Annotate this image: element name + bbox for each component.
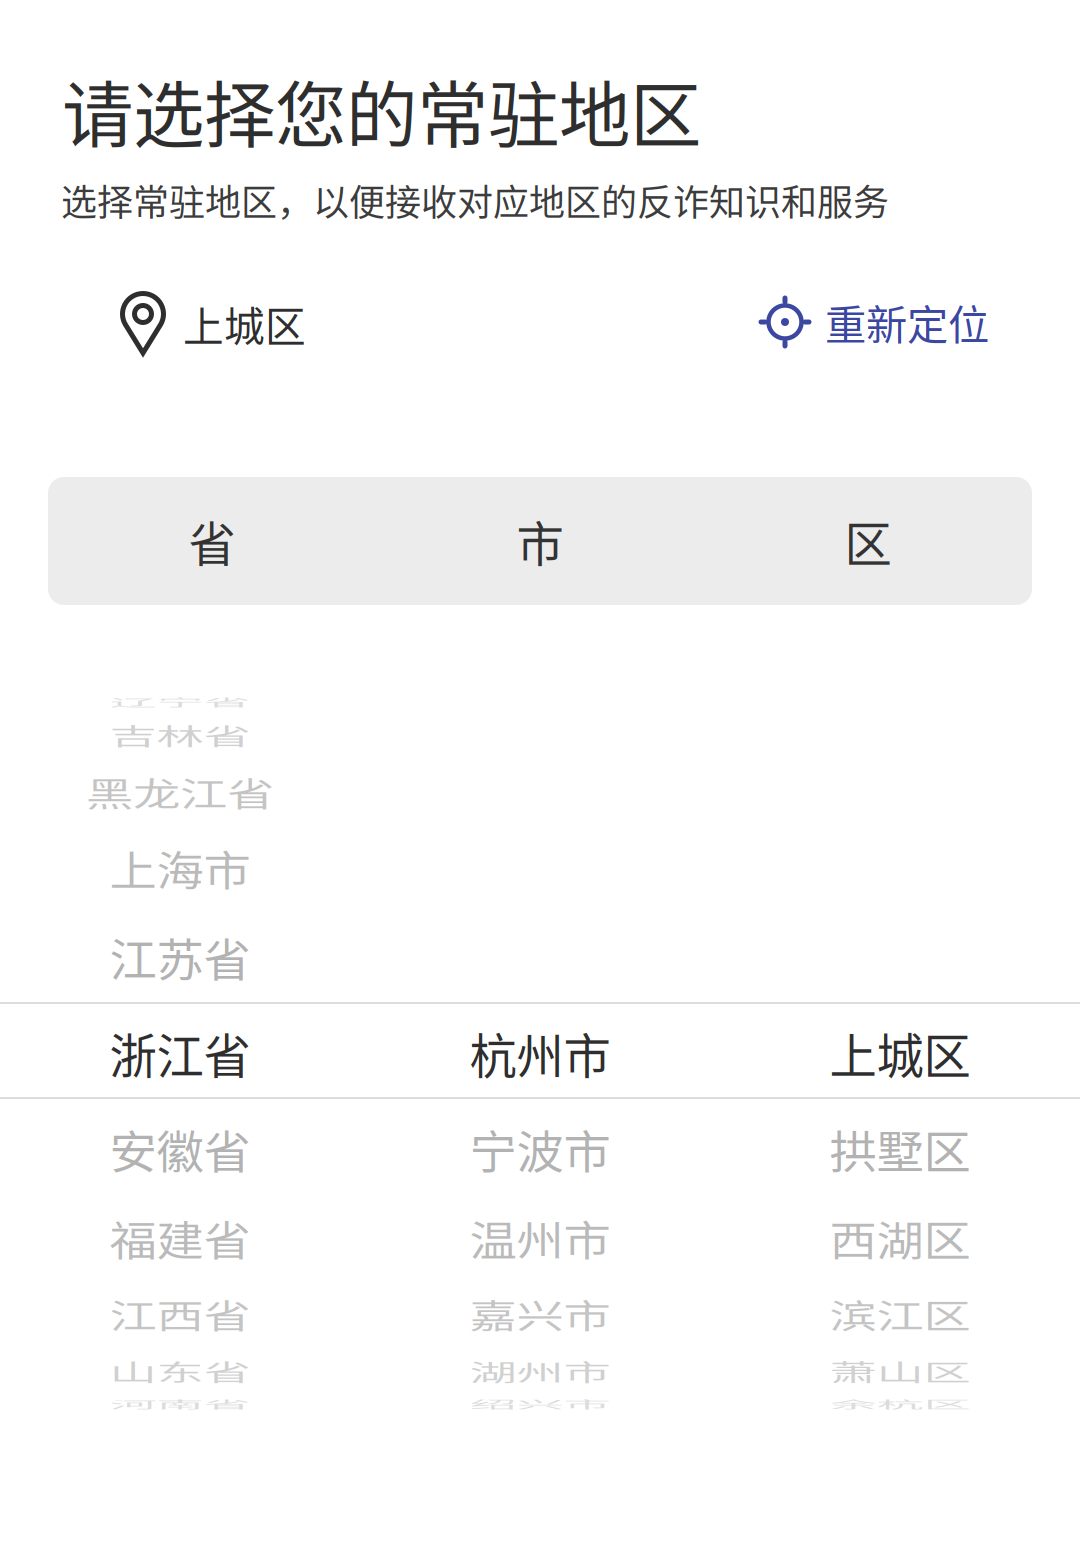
button[interactable]: 上海市: [0, 833, 360, 903]
staticText: 江西省: [109, 1280, 250, 1348]
staticText: 选择常驻地区，以便接收对应地区的反诈知识和服务: [61, 174, 889, 226]
staticText: 余杭区: [829, 1370, 970, 1438]
staticText: 请选择您的常驻地区: [62, 58, 701, 162]
staticText: 江苏省: [109, 923, 250, 991]
button[interactable]: 拱墅区: [720, 1114, 1080, 1184]
button[interactable]: 西湖区: [720, 1203, 1080, 1273]
button[interactable]: 区: [704, 477, 1032, 605]
staticText: 湖州市: [469, 1337, 610, 1405]
button[interactable]: 上城区: [720, 1005, 1080, 1100]
button[interactable]: 杭州市: [360, 1005, 720, 1100]
staticText: 温州市: [469, 1204, 610, 1272]
staticText: 上城区: [183, 295, 306, 353]
staticText: 福建省: [109, 1204, 250, 1272]
button[interactable]: 上城区: [113, 286, 312, 362]
button[interactable]: 嘉兴市: [360, 1279, 720, 1349]
staticText: 省: [188, 507, 235, 575]
staticText: 区: [844, 507, 891, 575]
staticText: 上城区: [829, 1019, 970, 1087]
button[interactable]: 山东省: [0, 1336, 360, 1406]
staticText: 西湖区: [829, 1204, 970, 1272]
button[interactable]: 安徽省: [0, 1114, 360, 1184]
staticText: 山东省: [109, 1337, 250, 1405]
staticText: 嘉兴市: [469, 1280, 610, 1348]
button[interactable]: 黑龙江省: [0, 757, 360, 827]
button[interactable]: 宁波市: [360, 1114, 720, 1184]
button[interactable]: 市: [376, 477, 704, 605]
staticText: 拱墅区: [829, 1115, 970, 1183]
staticText: 河南省: [109, 1370, 250, 1438]
staticText: 黑龙江省: [86, 758, 274, 826]
button[interactable]: 重新定位: [752, 284, 995, 360]
button[interactable]: 滨江区: [720, 1279, 1080, 1349]
button[interactable]: 江苏省: [0, 922, 360, 992]
button[interactable]: 河南省: [0, 1369, 360, 1439]
button[interactable]: 绍兴市: [360, 1369, 720, 1439]
button[interactable]: 温州市: [360, 1203, 720, 1273]
button[interactable]: 江西省: [0, 1279, 360, 1349]
button[interactable]: 省: [48, 477, 376, 605]
staticText: 重新定位: [825, 292, 989, 352]
button[interactable]: 辽宁省: [0, 667, 360, 737]
staticText: 杭州市: [469, 1019, 610, 1087]
staticText: 萧山区: [829, 1337, 970, 1405]
button[interactable]: 吉林省: [0, 700, 360, 770]
button[interactable]: 浙江省: [0, 1005, 360, 1100]
staticText: 宁波市: [469, 1115, 610, 1183]
staticText: 安徽省: [109, 1115, 250, 1183]
button[interactable]: 余杭区: [720, 1369, 1080, 1439]
staticText: 辽宁省: [109, 668, 250, 736]
staticText: 滨江区: [829, 1280, 970, 1348]
button[interactable]: 湖州市: [360, 1336, 720, 1406]
staticText: 上海市: [109, 834, 250, 902]
button[interactable]: 萧山区: [720, 1336, 1080, 1406]
staticText: 绍兴市: [469, 1370, 610, 1438]
staticText: 浙江省: [109, 1019, 250, 1087]
staticText: 市: [516, 507, 563, 575]
staticText: 吉林省: [109, 701, 250, 769]
button[interactable]: 福建省: [0, 1203, 360, 1273]
